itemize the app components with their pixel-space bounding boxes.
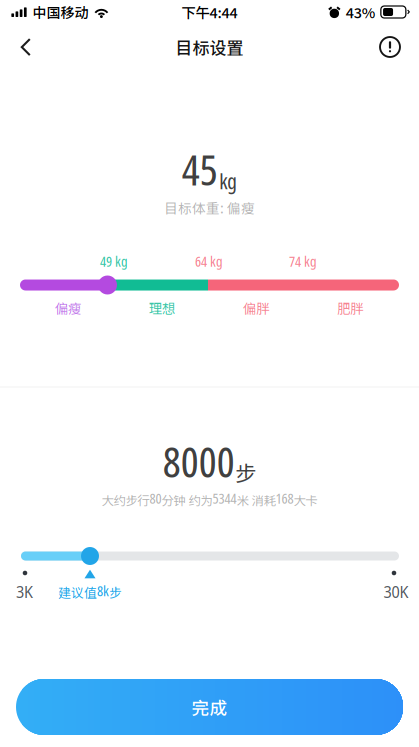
staticText: kg	[219, 166, 237, 196]
staticText: 43%	[346, 2, 376, 22]
staticText: 30K	[383, 582, 408, 602]
staticText: 45	[182, 140, 218, 198]
staticText: 中国移动	[32, 2, 88, 22]
staticText: 49 kg	[100, 251, 128, 271]
staticText: 完成	[191, 694, 227, 720]
button[interactable]: 返回	[3, 25, 49, 69]
staticText: 大约步行80分钟 约为5344米 消耗168大卡	[101, 488, 317, 508]
staticText: 74 kg	[289, 251, 317, 271]
staticText: 下午4:44	[181, 2, 237, 22]
staticText: 肥胖	[337, 298, 363, 318]
staticText: 建议值8k步	[58, 581, 122, 601]
staticText: 64 kg	[195, 251, 223, 271]
button[interactable]: 说明	[367, 25, 413, 69]
button[interactable]: 完成	[16, 679, 403, 735]
staticText: 偏瘦	[55, 298, 81, 318]
staticText: 目标设置	[175, 35, 243, 59]
staticText: 步	[235, 457, 256, 488]
staticText: 8000	[163, 432, 235, 490]
staticText: 3K	[16, 582, 33, 602]
staticText: 理想	[149, 298, 175, 318]
staticText: 偏胖	[243, 298, 269, 318]
staticText: 目标体重: 偏瘦	[164, 198, 255, 217]
